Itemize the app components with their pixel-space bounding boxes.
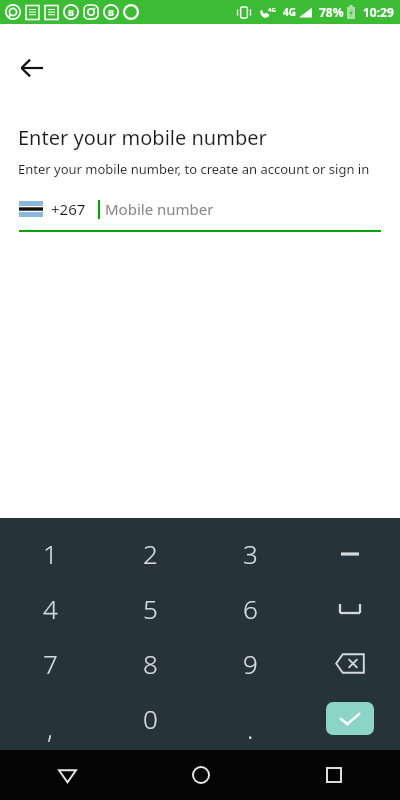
button[interactable]: +267 — [19, 194, 381, 224]
staticText: 0 — [143, 701, 158, 736]
button[interactable]: 5 — [100, 581, 200, 636]
button[interactable]: Back — [0, 750, 134, 800]
button[interactable]: 3 — [200, 526, 300, 581]
button[interactable]: Back — [8, 44, 56, 92]
staticText: 5 — [143, 591, 158, 626]
button[interactable]: , — [0, 691, 100, 746]
button[interactable]: Enter — [300, 691, 400, 746]
button[interactable]: 1 — [0, 526, 100, 581]
staticText: 3 — [243, 536, 258, 571]
staticText: , — [47, 711, 53, 746]
staticText: 4G — [283, 5, 296, 19]
staticText: 7 — [43, 646, 58, 681]
staticText: Enter your mobile number — [18, 124, 267, 151]
staticText: 9 — [243, 646, 258, 681]
staticText: 1 — [43, 536, 58, 571]
button[interactable]: 8 — [100, 636, 200, 691]
button[interactable]: 9 — [200, 636, 300, 691]
button[interactable]: Space — [300, 581, 400, 636]
staticText: Mobile number — [105, 199, 214, 219]
button[interactable]: . — [200, 691, 300, 746]
button[interactable]: 6 — [200, 581, 300, 636]
staticText: 4 — [43, 591, 58, 626]
button[interactable]: 0 — [100, 691, 200, 746]
button[interactable]: Backspace — [300, 636, 400, 691]
button[interactable]: Recent apps — [267, 750, 400, 800]
staticText: . — [247, 711, 254, 746]
staticText: 8 — [143, 646, 158, 681]
staticText: +267 — [51, 199, 86, 219]
button[interactable]: 4 — [0, 581, 100, 636]
button[interactable]: Dash — [300, 526, 400, 581]
staticText: 10:29 — [363, 4, 394, 20]
staticText: 6 — [243, 591, 258, 626]
button[interactable]: 7 — [0, 636, 100, 691]
staticText: Enter your mobile number, to create an a… — [18, 160, 370, 178]
button[interactable]: Home — [134, 750, 267, 800]
button[interactable]: 2 — [100, 526, 200, 581]
staticText: 2 — [143, 536, 158, 571]
staticText: B — [68, 6, 74, 18]
staticText: 4G — [268, 6, 276, 14]
staticText: 78% — [319, 4, 344, 20]
staticText: B — [108, 6, 114, 18]
